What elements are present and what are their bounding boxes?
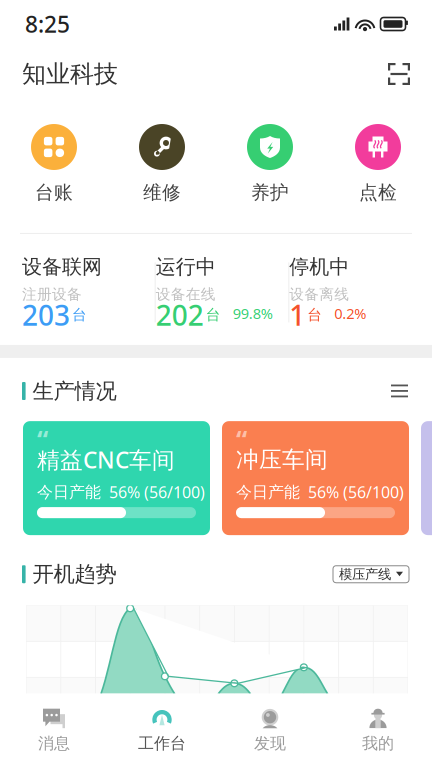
staticText: 知业科技 (22, 59, 118, 89)
staticText: 台账 (35, 181, 73, 204)
staticText: 56% (56/100) (109, 481, 205, 503)
staticText: 精益CNC车间 (37, 445, 175, 475)
staticText: 202 (156, 296, 204, 333)
staticText: 发现 (254, 734, 286, 753)
staticText: 我的 (362, 734, 394, 753)
button[interactable]: 更多 (385, 378, 414, 403)
button[interactable]: 发现 (216, 707, 324, 753)
staticText: 注册设备 (22, 285, 82, 303)
button[interactable]: 扫一扫 (388, 63, 410, 85)
button[interactable]: 我的 (324, 707, 432, 753)
staticText: 停机中 (289, 255, 349, 279)
staticText: 今日产能 (236, 482, 300, 502)
staticText: 养护 (251, 181, 289, 204)
staticText: 设备在线 (156, 285, 216, 303)
staticText: 台 (307, 306, 322, 324)
staticText: 点检 (359, 181, 397, 204)
staticText: 工作台 (138, 734, 186, 753)
staticText: 维修 (143, 181, 181, 204)
button[interactable]: 模压产线 (333, 566, 409, 583)
staticText: “ (37, 422, 48, 456)
staticText: 设备离线 (289, 285, 349, 303)
button[interactable]: 工作台 (108, 707, 216, 753)
staticText: 1 (289, 296, 305, 333)
button[interactable]: 台账 (0, 124, 108, 204)
staticText: 生产情况 (33, 378, 117, 404)
staticText: 台 (206, 306, 221, 324)
staticText: 56% (56/100) (308, 481, 404, 503)
staticText: 203 (22, 296, 70, 333)
button[interactable]: 消息 (0, 707, 108, 753)
staticText: 8:25 (25, 9, 70, 39)
staticText: 0.2% (334, 303, 366, 323)
staticText: 今日产能 (37, 482, 101, 502)
staticText: 运行中 (156, 255, 216, 279)
button[interactable]: 养护 (216, 124, 324, 204)
staticText: 设备联网 (22, 255, 102, 279)
staticText: 99.8% (233, 303, 273, 323)
staticText: 开机趋势 (33, 561, 117, 587)
button[interactable]: 维修 (108, 124, 216, 204)
staticText: 消息 (38, 734, 70, 753)
staticText: 模压产线 (339, 566, 391, 582)
staticText: 台 (72, 306, 87, 324)
staticText: 冲压车间 (236, 446, 328, 473)
staticText: “ (236, 422, 247, 456)
button[interactable]: 点检 (324, 124, 432, 204)
